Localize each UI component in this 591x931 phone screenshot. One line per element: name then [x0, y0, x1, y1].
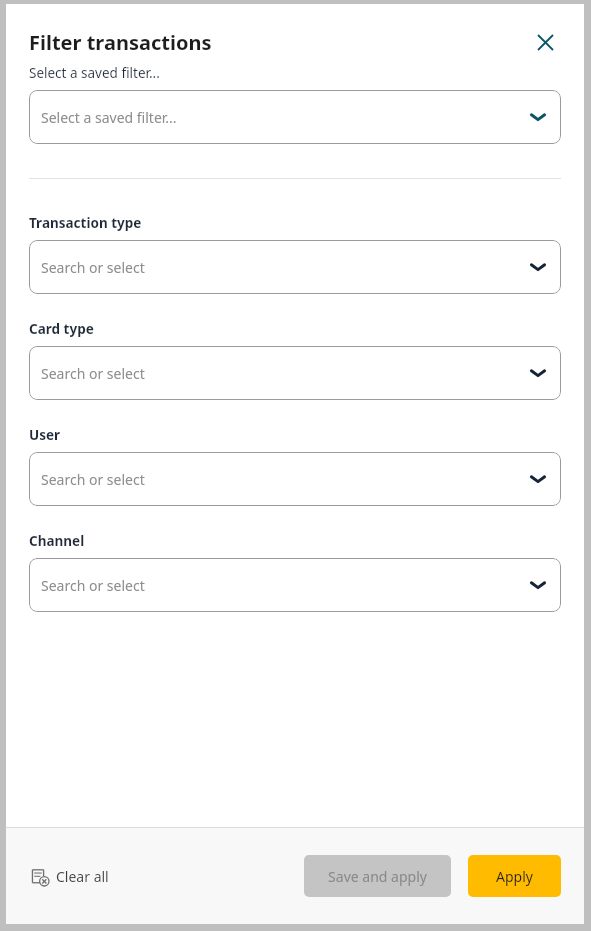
staticText: Channel: [29, 532, 85, 550]
staticText: Apply: [496, 867, 533, 886]
staticText: Save and apply: [328, 867, 427, 886]
button[interactable]: Search or select: [29, 346, 561, 400]
button[interactable]: Close: [529, 26, 561, 58]
staticText: Transaction type: [29, 214, 142, 232]
button[interactable]: Search or select: [29, 558, 561, 612]
staticText: Clear all: [56, 867, 109, 886]
staticText: Search or select: [41, 470, 527, 489]
staticText: Search or select: [41, 364, 527, 383]
staticText: Select a saved filter...: [41, 108, 527, 127]
button[interactable]: Search or select: [29, 240, 561, 294]
staticText: User: [29, 426, 61, 444]
staticText: Search or select: [41, 576, 527, 595]
staticText: Card type: [29, 320, 94, 338]
staticText: Filter transactions: [29, 29, 529, 56]
button[interactable]: Save and apply: [304, 855, 451, 897]
button[interactable]: Select a saved filter...: [29, 90, 561, 144]
button[interactable]: Apply: [468, 855, 561, 897]
button[interactable]: Clear all: [29, 861, 111, 892]
button[interactable]: Search or select: [29, 452, 561, 506]
staticText: Select a saved filter...: [29, 64, 160, 82]
staticText: Search or select: [41, 258, 527, 277]
